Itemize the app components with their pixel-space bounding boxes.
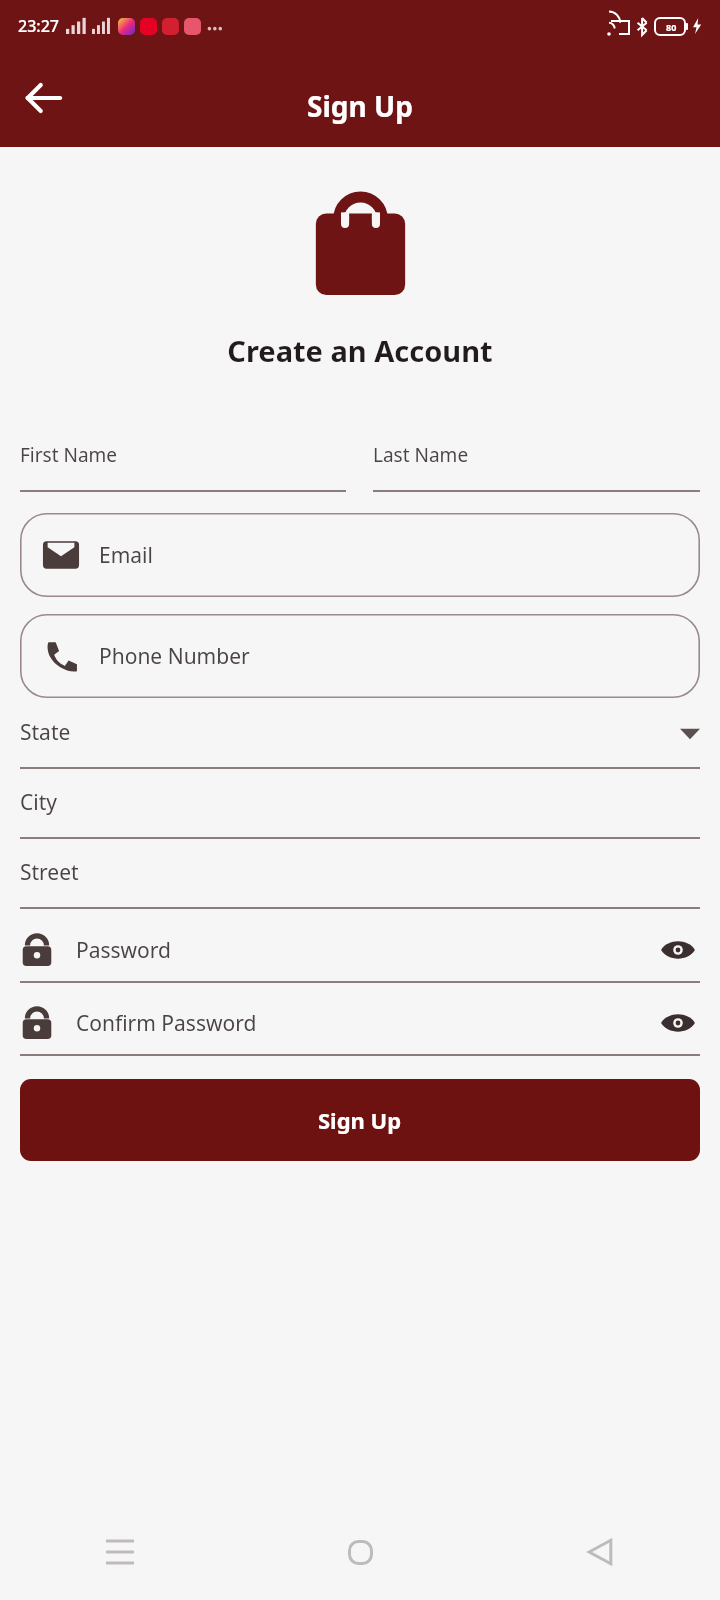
button[interactable]: Show password (656, 928, 700, 972)
button[interactable]: Email (20, 513, 700, 597)
button[interactable]: City (20, 788, 700, 839)
staticText: 80 (666, 21, 677, 33)
button[interactable]: Phone Number (20, 614, 700, 698)
button[interactable]: Last Name (373, 442, 700, 492)
button[interactable]: Password (20, 928, 700, 983)
staticText: State (20, 718, 71, 747)
button[interactable]: Back (480, 1504, 720, 1600)
staticText: Sign Up (307, 87, 413, 125)
button[interactable]: Show password (656, 1001, 700, 1045)
staticText: Street (20, 858, 79, 887)
button[interactable]: Recents (0, 1504, 240, 1600)
button[interactable]: First Name (20, 442, 346, 492)
button[interactable]: State (20, 718, 700, 769)
button[interactable]: Confirm Password (20, 1001, 700, 1056)
staticText: Email (99, 541, 153, 570)
staticText: First Name (20, 442, 118, 468)
staticText: City (20, 788, 57, 817)
staticText: Sign Up (318, 1105, 402, 1135)
staticText: Create an Account (0, 331, 720, 370)
staticText: Last Name (373, 442, 469, 468)
staticText: Password (76, 936, 171, 965)
staticText: Phone Number (99, 642, 250, 671)
button[interactable]: Back (18, 71, 72, 125)
button[interactable]: Home (240, 1504, 480, 1600)
staticText: Confirm Password (76, 1009, 257, 1038)
staticText: 23:27 (18, 15, 59, 37)
button[interactable]: Street (20, 858, 700, 909)
button[interactable]: Sign Up (20, 1079, 700, 1161)
